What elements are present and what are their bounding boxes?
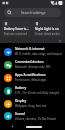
staticText: Volume, vibration, Do Not Disturb <box>15 117 57 121</box>
staticText: Battery <box>15 86 27 90</box>
staticText: Permissions, default apps <box>15 78 47 82</box>
button[interactable]: Battery Saver is on <box>2 20 31 37</box>
button[interactable]: Battery <box>0 84 65 97</box>
staticText: Sound <box>15 112 25 116</box>
button[interactable]: Home <box>26 126 42 128</box>
staticText: Screen tinted amber <box>35 32 60 35</box>
staticText: Apps & notifications <box>15 73 46 77</box>
staticText: Bluetooth, driving mode, NFC <box>15 65 51 69</box>
button[interactable]: Collapse suggestions <box>58 39 62 43</box>
staticText: Night Light is on <box>35 27 59 31</box>
staticText: Wi-Fi, mobile, data usage, and hotspot <box>15 52 62 56</box>
button[interactable]: Network & internet <box>0 45 65 58</box>
staticText: Network & internet <box>15 47 45 51</box>
staticText: Features restricted <box>4 32 27 35</box>
button[interactable]: Display <box>0 97 65 110</box>
other: Search <box>7 10 12 15</box>
button[interactable]: Apps & notifications <box>0 71 65 84</box>
staticText: Battery Saver is on <box>4 27 29 31</box>
button[interactable]: Night Light is on <box>33 20 63 37</box>
button[interactable]: Sound <box>0 110 65 122</box>
staticText: Search settings <box>21 10 46 15</box>
button[interactable]: Connected devices <box>0 58 65 71</box>
staticText: Wallpaper, sleep, font size <box>15 104 47 108</box>
staticText: Display <box>15 99 27 103</box>
button[interactable]: Back <box>10 124 15 129</box>
staticText: 61% - 2 hr 30 min until fully charged <box>15 91 59 95</box>
button[interactable]: Search <box>4 8 61 17</box>
staticText: Connected devices <box>15 60 44 64</box>
